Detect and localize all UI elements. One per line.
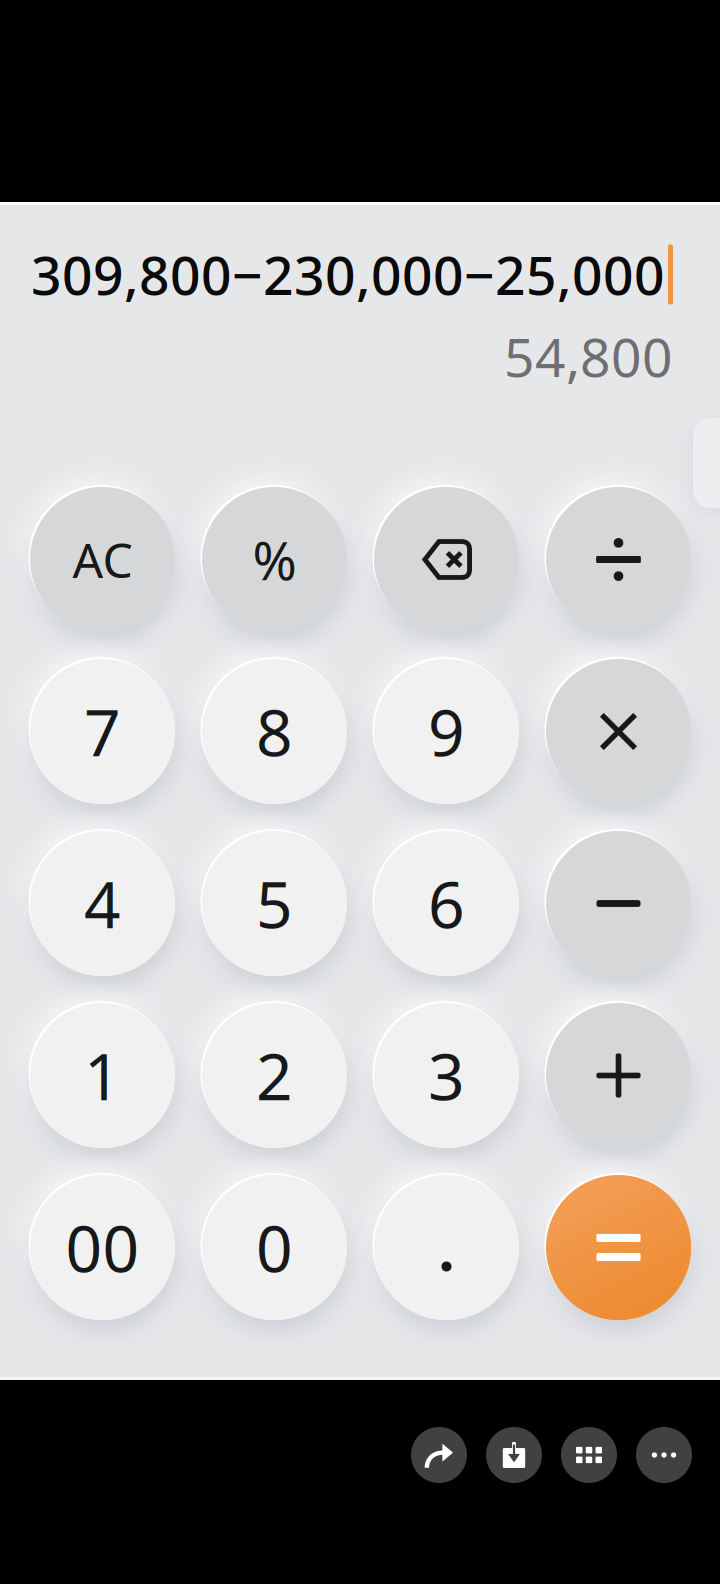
staticText: 6 [428, 861, 465, 946]
staticText: 0 [256, 1205, 293, 1290]
staticText: 7 [84, 689, 121, 774]
button[interactable]: 00 [30, 1175, 175, 1320]
button[interactable]: Decimal point [374, 1175, 519, 1320]
staticText: 54,800 [504, 321, 673, 392]
button[interactable]: Minus [546, 831, 691, 976]
button[interactable]: 0 [202, 1175, 347, 1320]
staticText: 5 [256, 861, 293, 946]
button[interactable]: 7 [30, 659, 175, 804]
staticText: 2 [256, 1033, 293, 1118]
button[interactable]: AC [30, 487, 175, 632]
button[interactable]: 2 [202, 1003, 347, 1148]
staticText: 00 [65, 1205, 139, 1290]
button[interactable]: Equals [546, 1175, 691, 1320]
button[interactable]: Apps [561, 1427, 617, 1483]
button[interactable]: Multiply [546, 659, 691, 804]
staticText: AC [72, 528, 132, 591]
button[interactable]: 8 [202, 659, 347, 804]
staticText: 309,800−230,000−25,000 [31, 239, 665, 310]
button[interactable]: Share [411, 1427, 467, 1483]
button[interactable]: % [202, 487, 347, 632]
button[interactable]: Divide [546, 487, 691, 632]
button[interactable]: 3 [374, 1003, 519, 1148]
button[interactable]: 1 [30, 1003, 175, 1148]
button[interactable]: Save [486, 1427, 542, 1483]
button[interactable]: 6 [374, 831, 519, 976]
staticText: 1 [84, 1033, 121, 1118]
staticText: 3 [428, 1033, 465, 1118]
button[interactable]: 4 [30, 831, 175, 976]
button[interactable]: Delete [374, 487, 519, 632]
button[interactable]: Plus [546, 1003, 691, 1148]
button[interactable]: 9 [374, 659, 519, 804]
staticText: % [252, 524, 296, 595]
staticText: 9 [428, 689, 465, 774]
staticText: 8 [256, 689, 293, 774]
staticText: 4 [84, 861, 121, 946]
button[interactable]: 5 [202, 831, 347, 976]
button[interactable]: More [636, 1427, 692, 1483]
